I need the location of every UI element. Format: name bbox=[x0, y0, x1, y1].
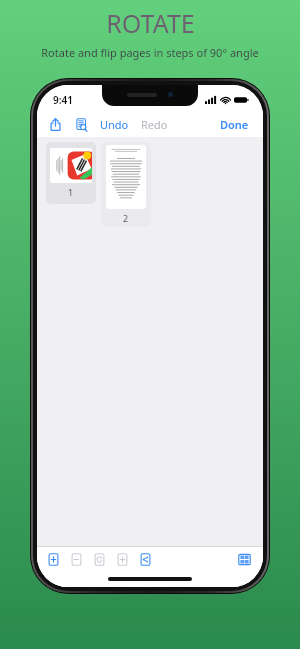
button[interactable]: Duplicate page bbox=[116, 552, 129, 567]
button[interactable]: Done bbox=[218, 115, 251, 134]
staticText: Done bbox=[220, 117, 249, 132]
staticText: 2 bbox=[123, 212, 129, 224]
staticText: ROTATE bbox=[106, 6, 195, 40]
staticText: Undo bbox=[100, 117, 129, 132]
staticText: Rotate and flip pages in steps of 90° an… bbox=[41, 45, 259, 60]
button[interactable]: Redo bbox=[139, 115, 170, 134]
button[interactable]: Insert page bbox=[47, 552, 60, 567]
button[interactable]: Undo bbox=[98, 115, 131, 134]
staticText: Redo bbox=[141, 117, 168, 132]
button[interactable]: Share bbox=[47, 116, 64, 133]
button[interactable]: Share page bbox=[139, 552, 152, 567]
staticText: 1 bbox=[68, 186, 74, 198]
button[interactable]: Delete page bbox=[70, 552, 83, 567]
button[interactable]: 1 bbox=[46, 142, 96, 204]
button[interactable]: Search document bbox=[73, 116, 90, 133]
staticText: 9:41 bbox=[53, 93, 73, 107]
button[interactable]: 2 bbox=[101, 142, 151, 227]
button[interactable]: Rotate page bbox=[93, 552, 106, 567]
button[interactable]: Grid view bbox=[238, 553, 251, 566]
